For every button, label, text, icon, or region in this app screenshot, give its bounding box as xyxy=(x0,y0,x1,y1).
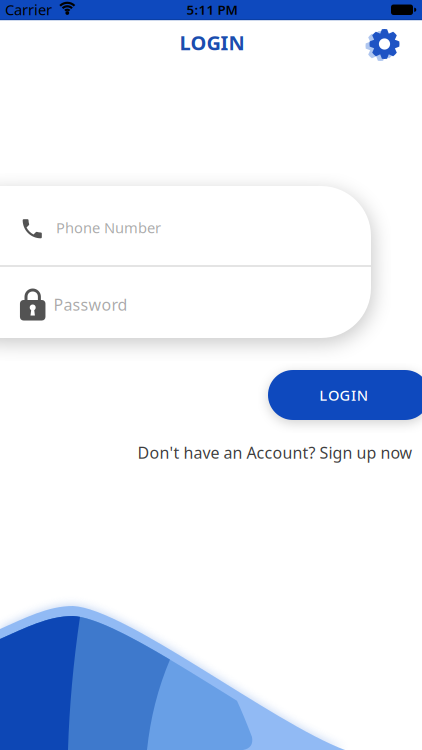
staticText: 5:11 PM xyxy=(186,1,237,18)
button[interactable]: Password xyxy=(0,266,371,338)
staticText: LOGIN xyxy=(179,29,244,56)
button[interactable]: LOGIN xyxy=(268,370,422,420)
button[interactable]: Don't have an Account? Sign up now xyxy=(137,442,412,463)
staticText: Phone Number xyxy=(56,218,161,237)
staticText: Carrier xyxy=(5,0,52,19)
staticText: LOGIN xyxy=(319,385,368,405)
staticText: Don't have an Account? Sign up now xyxy=(137,442,412,463)
button[interactable]: Settings xyxy=(366,25,403,62)
staticText: Password xyxy=(54,294,128,315)
button[interactable]: Phone Number xyxy=(0,186,371,266)
